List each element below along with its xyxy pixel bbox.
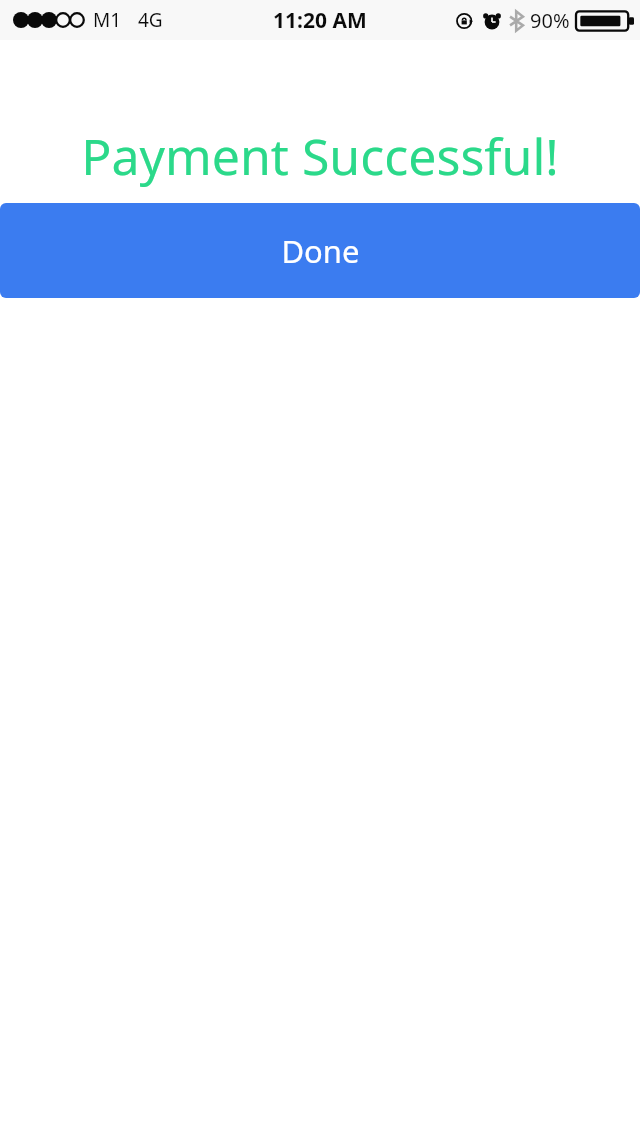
other: Alarm <box>482 11 502 31</box>
staticText: M1 <box>93 7 122 33</box>
other: Battery 90 percent <box>576 9 634 33</box>
other: Bluetooth <box>509 10 524 32</box>
staticText: 11:20 AM <box>273 6 367 35</box>
staticText: Payment Successful! <box>0 122 640 190</box>
staticText: 4G <box>138 7 163 33</box>
staticText: Done <box>281 230 360 272</box>
staticText: 90% <box>530 7 570 34</box>
button[interactable]: Done <box>0 203 640 298</box>
other: Rotation lock <box>455 11 475 31</box>
